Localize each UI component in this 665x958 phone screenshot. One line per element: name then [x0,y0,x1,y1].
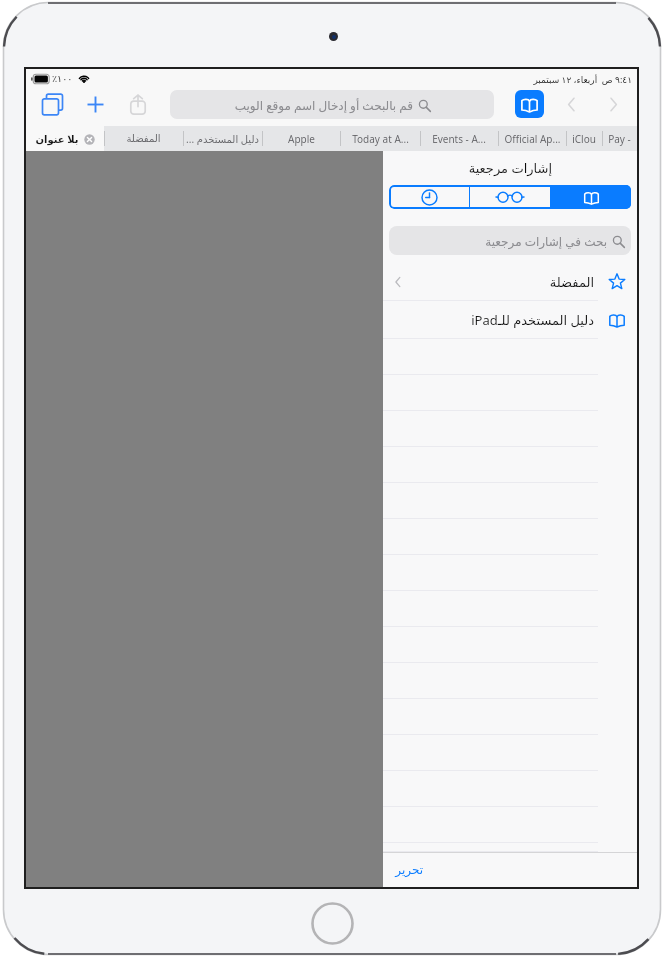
button[interactable]: تحرير [395,863,423,877]
staticText: قم بالبحث أو إدخال اسم موقع الويب [234,97,413,113]
staticText: المفضلة [126,133,161,145]
staticText: iClou [572,132,596,146]
button[interactable]: Today at A... [340,126,420,151]
button[interactable]: Forward [599,90,627,118]
button[interactable]: Show tab overview [34,86,70,122]
staticText: ٪١٠٠ [52,73,73,84]
button[interactable]: Reading list [470,185,550,209]
staticText: Pay - [608,132,631,146]
staticText: Apple [288,132,315,146]
staticText: Official Ap... [504,132,561,146]
button[interactable]: دليل المستخدم ... [183,126,262,151]
button[interactable]: Apple [262,126,340,151]
staticText: Events - A... [432,132,486,146]
button[interactable]: Back [557,90,585,118]
staticText: دليل المستخدم للـiPad [471,311,594,329]
button[interactable]: المفضلة [104,126,183,151]
staticText: ٩:٤١ ص أربعاء، ١٢ سبتمبر [533,73,632,85]
button[interactable]: Official Ap... [498,126,566,151]
button[interactable]: Bookmarks [551,185,631,209]
button[interactable]: Share [120,86,156,122]
button[interactable]: المفضلة [383,263,637,301]
staticText: بلا عنوان [35,132,79,146]
button[interactable]: بلا عنوان [26,126,104,151]
staticText: Today at A... [352,132,409,146]
button[interactable]: دليل المستخدم للـiPad [383,301,637,339]
button[interactable]: قم بالبحث أو إدخال اسم موقع الويب [170,90,494,119]
staticText: بحث في إشارات مرجعية [485,233,607,249]
button[interactable]: New tab [77,86,113,122]
button[interactable]: History [389,185,469,209]
staticText: دليل المستخدم ... [186,132,259,146]
staticText: المفضلة [549,275,594,290]
button[interactable]: Pay - [602,126,637,151]
staticText: تحرير [395,863,423,877]
button[interactable]: بحث في إشارات مرجعية [389,226,631,255]
button[interactable]: iClou [566,126,602,151]
button[interactable]: Bookmarks [515,90,544,118]
button[interactable]: Events - A... [420,126,498,151]
staticText: إشارات مرجعية [468,159,552,177]
